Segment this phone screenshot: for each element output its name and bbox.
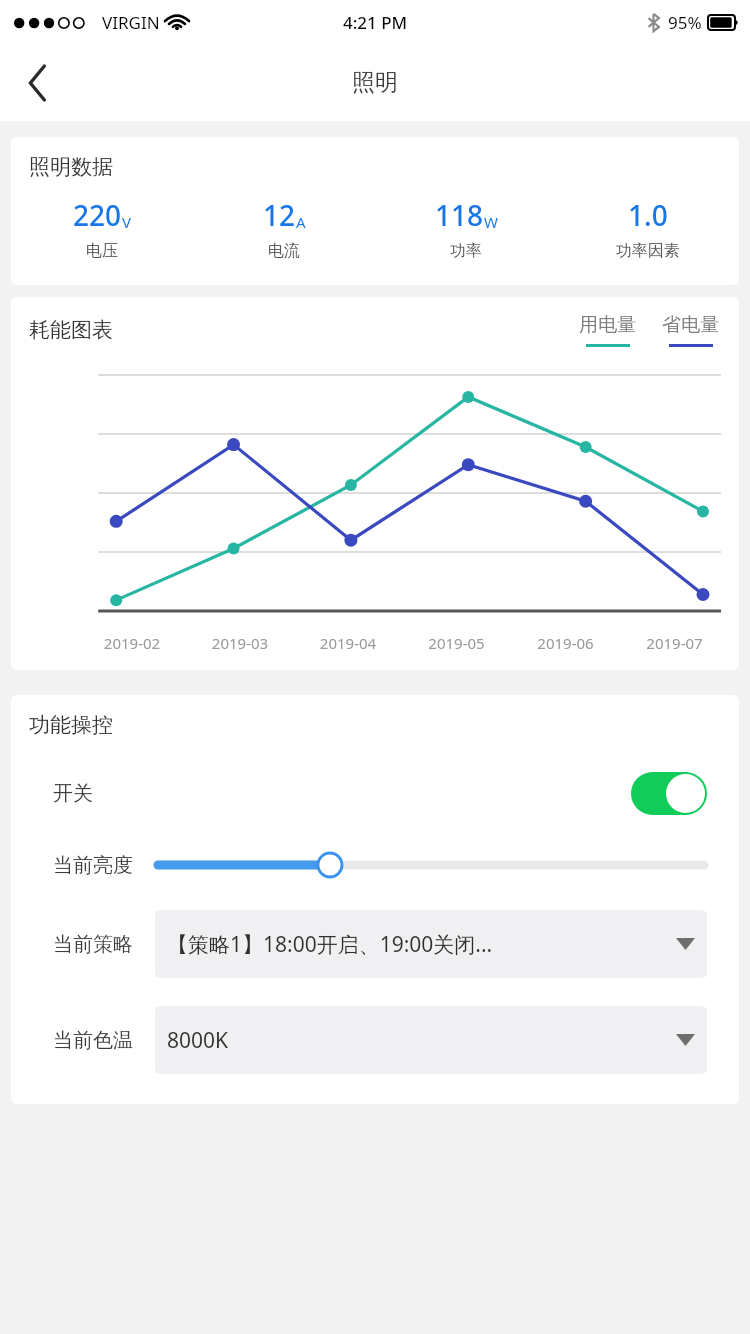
staticText: A bbox=[296, 212, 306, 232]
button[interactable]: 【策略1】18:00开启、19:00关闭... bbox=[155, 910, 707, 978]
staticText: 220 bbox=[73, 196, 122, 234]
staticText: 【策略1】18:00开启、19:00关闭... bbox=[167, 930, 670, 959]
staticText: 2019-02 bbox=[78, 633, 186, 653]
staticText: 耗能图表 bbox=[29, 317, 113, 343]
staticText: 118 bbox=[435, 196, 484, 234]
staticText: 2019-06 bbox=[511, 633, 620, 653]
staticText: 当前亮度 bbox=[53, 853, 133, 878]
staticText: 4:21 PM bbox=[343, 11, 408, 34]
staticText: 12 bbox=[263, 196, 296, 234]
staticText: 开关 bbox=[53, 781, 93, 806]
staticText: 2019-04 bbox=[294, 633, 402, 653]
staticText: 1.0 bbox=[628, 196, 668, 234]
staticText: 省电量 bbox=[662, 313, 719, 337]
staticText: 95% bbox=[668, 11, 702, 34]
staticText: 功率因素 bbox=[616, 241, 680, 261]
button[interactable]: Switch on bbox=[631, 772, 707, 815]
staticText: 8000K bbox=[167, 1026, 670, 1055]
staticText: 当前策略 bbox=[53, 932, 133, 957]
button[interactable]: 用电量 bbox=[577, 313, 638, 347]
button[interactable]: Back bbox=[12, 57, 64, 109]
staticText: 当前色温 bbox=[53, 1028, 133, 1053]
staticText: V bbox=[122, 212, 132, 232]
staticText: 功率 bbox=[450, 241, 482, 261]
staticText: 2019-05 bbox=[402, 633, 511, 653]
staticText: W bbox=[484, 212, 498, 232]
staticText: 照明数据 bbox=[29, 154, 113, 180]
button[interactable]: 8000K bbox=[155, 1006, 707, 1074]
staticText: 2019-03 bbox=[186, 633, 294, 653]
staticText: 功能操控 bbox=[29, 712, 113, 738]
staticText: 2019-07 bbox=[620, 633, 729, 653]
staticText: VIRGIN bbox=[102, 11, 160, 34]
staticText: 照明 bbox=[352, 68, 398, 97]
staticText: 用电量 bbox=[579, 313, 636, 337]
staticText: 电流 bbox=[268, 241, 300, 261]
button[interactable]: 省电量 bbox=[660, 313, 721, 347]
button[interactable]: Brightness slider bbox=[155, 848, 707, 882]
staticText: 电压 bbox=[86, 241, 118, 261]
